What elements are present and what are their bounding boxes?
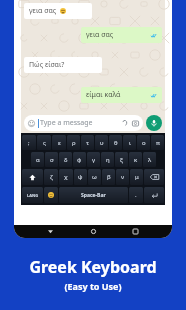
button[interactable]: γ [87,152,100,167]
staticText: ε [58,139,61,147]
button[interactable]: γεια σας [81,27,162,43]
button[interactable]: Type a message [24,115,143,131]
button[interactable]: Shift [22,169,43,185]
button[interactable]: Space-Bar [59,187,128,203]
button[interactable]: ξ [115,152,128,167]
button[interactable]: φ [73,152,86,167]
button[interactable]: υ [95,135,108,150]
button[interactable]: β [102,169,115,185]
staticText: υ [100,139,104,147]
button[interactable]: κ [129,152,142,167]
staticText: Greek Keyboard [29,256,157,278]
button[interactable]: . [129,187,143,203]
button[interactable]: γεια σας [24,3,92,19]
other: Camera [132,120,139,127]
button[interactable]: Home [87,225,100,238]
staticText: θ [114,139,118,147]
staticText: π [156,139,160,147]
button[interactable]: Back [44,225,57,238]
staticText: α [36,156,40,164]
staticText: χ [64,173,68,181]
staticText: LANG [27,193,39,198]
button[interactable]: Recents [129,225,142,238]
staticText: γ [92,156,96,164]
staticText: τ [86,139,89,147]
button[interactable]: ε [52,135,66,150]
button[interactable]: ρ [67,135,80,150]
button[interactable]: ι [123,135,136,150]
button[interactable]: ν [116,169,129,185]
staticText: ν [121,173,125,181]
staticText: ξ [120,156,123,164]
staticText: ρ [72,139,76,147]
button[interactable]: Πώς είσαι? [24,57,102,73]
staticText: ο [142,139,146,147]
staticText: γεια σας [86,30,114,40]
button[interactable]: σ [45,152,58,167]
staticText: μ [135,173,139,181]
staticText: φ [77,156,82,164]
button[interactable]: α [31,152,44,167]
staticText: Space-Bar [81,192,106,199]
button[interactable]: ο [137,135,150,150]
staticText: λ [148,156,152,164]
button[interactable]: θ [109,135,122,150]
staticText: ψ [78,173,83,181]
button[interactable]: δ [59,152,72,167]
button[interactable]: ω [88,169,101,185]
staticText: ω [92,173,97,181]
staticText: κ [134,156,138,164]
staticText: η [106,156,110,164]
button[interactable]: είμαι καλά [81,87,162,103]
staticText: . [135,191,137,199]
button[interactable]: Language [22,187,43,203]
button[interactable]: η [101,152,114,167]
staticText: (Easy to Use) [64,280,122,292]
staticText: ; [28,139,30,147]
button[interactable]: ψ [74,169,87,185]
staticText: ζ [50,173,53,181]
staticText: σ [50,156,54,164]
staticText: β [107,173,111,181]
staticText: Πώς είσαι? [29,60,65,70]
staticText: δ [64,156,68,164]
button[interactable]: Backspace [144,169,164,185]
button[interactable]: ζ [44,169,58,185]
button[interactable]: λ [143,152,156,167]
button[interactable]: τ [81,135,94,150]
staticText: ς [43,139,46,147]
button[interactable]: ; [22,135,36,150]
staticText: ι [129,139,131,147]
button[interactable]: π [151,135,164,150]
other: Attach [121,119,129,127]
button[interactable]: χ [59,169,73,185]
button[interactable]: Enter [144,187,164,203]
staticText: Type a message [40,118,93,128]
button[interactable]: μ [130,169,143,185]
button[interactable]: Voice message [146,115,162,131]
staticText: είμαι καλά [86,90,121,100]
button[interactable]: Emoji [44,187,58,203]
staticText: γεια σας [29,6,57,16]
button[interactable]: ς [37,135,51,150]
